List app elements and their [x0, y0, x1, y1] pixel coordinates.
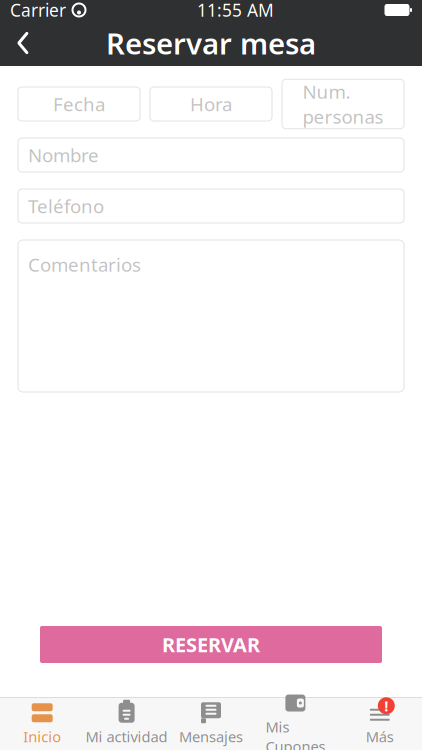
staticText: Fecha	[53, 92, 105, 116]
staticText: Mis Cupones	[265, 717, 325, 750]
staticText: Hora	[190, 92, 232, 116]
staticText: Reservar mesa	[106, 23, 316, 62]
staticText: Inicio	[23, 727, 61, 746]
staticText: Teléfono	[28, 194, 104, 218]
staticText: Nombre	[28, 143, 99, 167]
button[interactable]: !	[338, 698, 422, 750]
button[interactable]: Hora	[150, 87, 272, 121]
button[interactable]: RESERVAR	[40, 626, 382, 663]
button[interactable]: Nombre	[18, 138, 404, 172]
staticText: RESERVAR	[162, 631, 260, 658]
button[interactable]: Mis Cupones	[253, 698, 338, 750]
button[interactable]: Comentarios	[18, 240, 404, 392]
button[interactable]: Teléfono	[18, 189, 404, 223]
staticText: Comentarios	[28, 252, 141, 277]
button[interactable]: Num. personas	[282, 79, 404, 129]
button[interactable]: Fecha	[18, 87, 140, 121]
staticText: Mensajes	[179, 727, 243, 746]
staticText: 11:55 AM	[197, 0, 274, 21]
button[interactable]: Back	[0, 20, 46, 66]
button[interactable]: Mensajes	[169, 698, 253, 750]
staticText: Más	[366, 727, 394, 746]
staticText: Num. personas	[302, 79, 383, 129]
staticText: Mi actividad	[86, 727, 168, 746]
staticText: Carrier	[10, 0, 66, 21]
staticText: !	[384, 696, 388, 715]
button[interactable]: Inicio	[0, 698, 84, 750]
button[interactable]: Mi actividad	[84, 698, 169, 750]
